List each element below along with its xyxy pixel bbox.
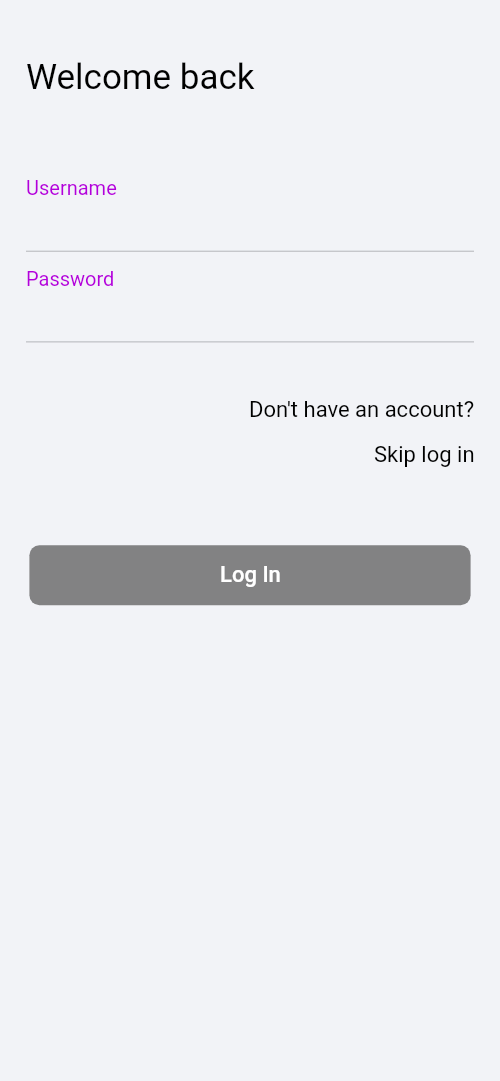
staticText: Welcome back [26,57,255,98]
button[interactable]: Username [26,176,474,252]
staticText: Username [26,176,117,199]
staticText: Log In [220,562,281,588]
button[interactable]: Log In [29,545,471,605]
button[interactable]: Skip log in [374,442,475,468]
button[interactable]: Don't have an account? [249,397,475,423]
staticText: Password [26,267,115,290]
button[interactable]: Password [26,267,474,343]
